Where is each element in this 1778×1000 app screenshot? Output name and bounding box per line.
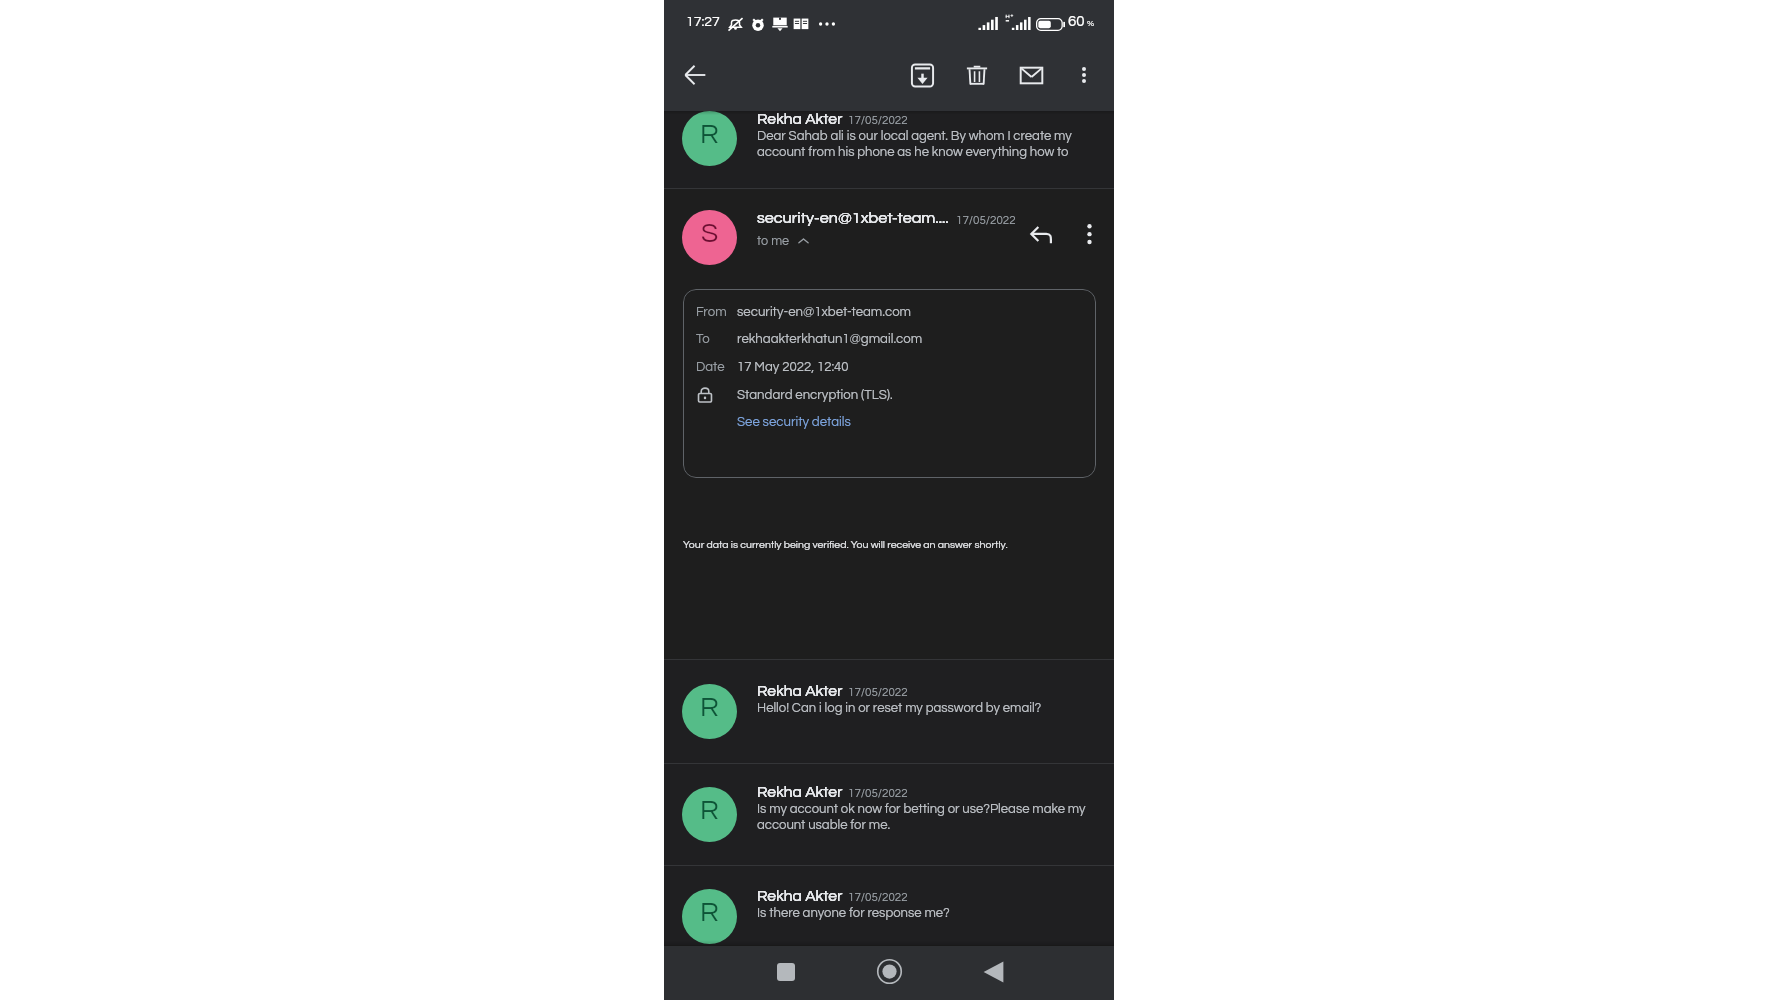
staticText: 17:27 [686,15,720,29]
staticText: 60 [1068,14,1085,29]
staticText: Hello! Can i log in or reset my password… [757,701,1042,714]
staticText: Is there anyone for response me? [757,906,950,919]
staticText: 17/05/2022 [848,787,908,799]
button[interactable]: R [664,660,1114,763]
staticText: S [701,219,719,248]
staticText: Date [696,360,725,374]
staticText: Rekha Akter [757,111,843,127]
staticText: Is my account ok now for betting or use?… [757,802,1086,815]
staticText: 17/05/2022 [848,686,908,698]
staticText: account usable for me. [757,818,891,831]
staticText: to me [757,235,790,248]
staticText: Dear Sahab ali is our local agent. By wh… [757,129,1072,142]
button[interactable]: More options [1062,53,1106,97]
staticText: security-en@1xbet-team.... [757,210,949,227]
button[interactable]: Archive [900,53,944,97]
button[interactable]: R [664,763,1114,865]
button[interactable]: More options [1067,212,1111,256]
staticText: R [700,898,719,927]
staticText: 17 May 2022, 12:40 [737,360,849,374]
button[interactable]: Back [673,53,717,97]
button[interactable]: Home [867,949,911,993]
staticText: account from his phone as he know everyt… [757,145,1069,158]
staticText: Rekha Akter [757,784,843,800]
staticText: security-en@1xbet-team.... [757,210,949,227]
staticText: 17/05/2022 [848,891,908,903]
button[interactable]: See security details [737,415,851,429]
button[interactable]: Mark as unread [1009,53,1053,97]
button[interactable]: Reply [1019,213,1063,257]
button[interactable]: Back [971,950,1015,994]
staticText: R [700,693,719,722]
button[interactable]: R [664,111,1114,188]
staticText: Rekha Akter [757,888,843,904]
staticText: Rekha Akter [757,784,843,800]
staticText: To [696,332,710,346]
staticText: security-en@1xbet-team.com [737,305,912,319]
staticText: Your data is currently being verified. Y… [683,539,1008,550]
staticText: Rekha Akter [757,683,843,699]
staticText: 17/05/2022 [956,214,1016,226]
staticText: % [1087,19,1095,28]
staticText: R [700,120,719,149]
staticText: R [700,796,719,825]
button[interactable]: Delete [955,53,999,97]
staticText: rekhaakterkhatun1@gmail.com [737,332,923,346]
staticText: From [696,305,727,319]
staticText: Standard encryption (TLS). [737,388,893,402]
staticText: Rekha Akter [757,111,843,127]
button[interactable]: R [664,866,1114,945]
button[interactable]: Recent apps [764,950,808,994]
staticText: Rekha Akter [757,683,843,699]
staticText: Rekha Akter [757,888,843,904]
staticText: 17/05/2022 [848,114,908,126]
